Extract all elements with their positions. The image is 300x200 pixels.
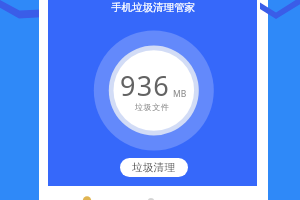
button[interactable]: Tools [136, 192, 166, 200]
staticText: 936 [120, 67, 170, 104]
staticText: 垃圾文件 [135, 102, 170, 112]
staticText: MB [173, 88, 187, 100]
button[interactable]: 垃圾清理 [120, 158, 188, 177]
staticText: 垃圾清理 [132, 161, 176, 174]
staticText: 手机垃圾清理管家 [111, 1, 195, 14]
button[interactable]: Clean [72, 190, 102, 200]
